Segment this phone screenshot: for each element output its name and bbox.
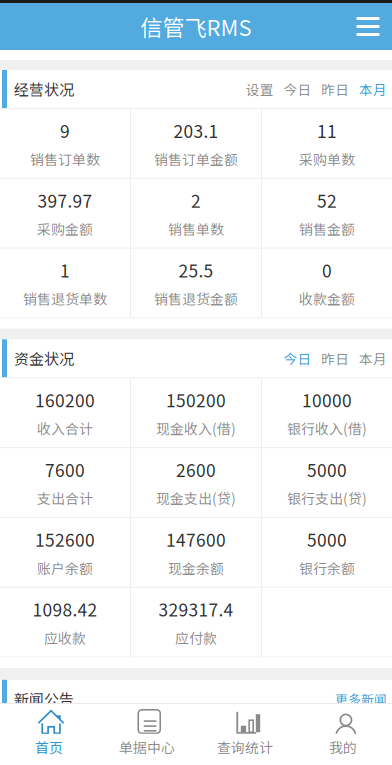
staticText: 支出合计 bbox=[37, 488, 93, 508]
staticText: 397.97 bbox=[37, 188, 92, 213]
staticText: 现金收入(借) bbox=[156, 418, 236, 438]
button[interactable]: 我的 bbox=[294, 704, 392, 765]
staticText: 今日 bbox=[283, 348, 311, 368]
staticText: 152600 bbox=[35, 527, 95, 552]
button[interactable]: 菜单 bbox=[344, 3, 392, 50]
staticText: 应收款 bbox=[44, 628, 86, 648]
button[interactable]: 设置 bbox=[241, 70, 279, 108]
staticText: 9 bbox=[60, 118, 70, 143]
staticText: 采购单数 bbox=[299, 149, 355, 169]
button[interactable]: 昨日 bbox=[316, 70, 354, 108]
staticText: 2600 bbox=[176, 457, 216, 482]
button[interactable]: 今日 bbox=[279, 339, 316, 377]
staticText: 329317.4 bbox=[158, 596, 233, 622]
button[interactable]: 本月 bbox=[354, 339, 392, 377]
staticText: 2 bbox=[191, 188, 201, 213]
staticText: 1 bbox=[60, 257, 70, 282]
button[interactable]: 更多新闻 bbox=[335, 689, 392, 708]
staticText: 52 bbox=[317, 188, 337, 213]
staticText: 账户余额 bbox=[37, 558, 93, 578]
staticText: 银行收入(借) bbox=[287, 418, 367, 438]
button[interactable]: 昨日 bbox=[316, 339, 354, 377]
staticText: 销售订单金额 bbox=[154, 149, 238, 169]
staticText: 销售订单数 bbox=[30, 149, 100, 169]
staticText: 昨日 bbox=[321, 348, 349, 368]
staticText: 单据中心 bbox=[119, 737, 175, 757]
staticText: 经营状况 bbox=[14, 78, 74, 100]
staticText: 首页 bbox=[35, 737, 63, 757]
staticText: 现金支出(贷) bbox=[156, 488, 236, 508]
staticText: 5000 bbox=[307, 527, 347, 552]
staticText: 5000 bbox=[307, 457, 347, 482]
staticText: 销售退货金额 bbox=[154, 288, 238, 309]
staticText: 本月 bbox=[359, 79, 387, 99]
staticText: 销售退货单数 bbox=[23, 288, 107, 309]
staticText: 25.5 bbox=[178, 257, 213, 282]
staticText: 现金余额 bbox=[168, 558, 224, 578]
staticText: 销售金额 bbox=[299, 219, 355, 239]
staticText: 11 bbox=[317, 118, 337, 143]
staticText: 销售单数 bbox=[168, 219, 224, 239]
staticText: 我的 bbox=[329, 737, 357, 757]
button[interactable]: 今日 bbox=[279, 70, 316, 108]
staticText: 银行余额 bbox=[299, 558, 355, 578]
staticText: 更多新闻 bbox=[335, 689, 387, 708]
staticText: 本月 bbox=[359, 348, 387, 368]
staticText: 147600 bbox=[166, 527, 226, 552]
staticText: 资金状况 bbox=[14, 347, 74, 369]
button[interactable]: 单据中心 bbox=[98, 704, 196, 765]
staticText: 银行支出(贷) bbox=[287, 488, 367, 508]
staticText: 应付款 bbox=[175, 628, 217, 648]
staticText: 10000 bbox=[302, 387, 352, 412]
staticText: 今日 bbox=[283, 79, 311, 99]
staticText: 7600 bbox=[45, 457, 85, 482]
staticText: 设置 bbox=[246, 79, 274, 99]
staticText: 新闻公告 bbox=[14, 688, 74, 710]
staticText: 1098.42 bbox=[32, 596, 97, 622]
button[interactable]: 首页 bbox=[0, 704, 98, 765]
staticText: 昨日 bbox=[321, 79, 349, 99]
staticText: 信管飞RMS bbox=[140, 11, 251, 42]
staticText: 收款金额 bbox=[299, 288, 355, 309]
staticText: 203.1 bbox=[173, 118, 218, 143]
staticText: 160200 bbox=[35, 387, 95, 412]
staticText: 查询统计 bbox=[217, 737, 273, 757]
staticText: 收入合计 bbox=[37, 418, 93, 438]
button[interactable]: 查询统计 bbox=[196, 704, 294, 765]
staticText: 采购金额 bbox=[37, 219, 93, 239]
staticText: 0 bbox=[322, 257, 332, 282]
staticText: 150200 bbox=[166, 387, 226, 412]
button[interactable]: 本月 bbox=[354, 70, 392, 108]
